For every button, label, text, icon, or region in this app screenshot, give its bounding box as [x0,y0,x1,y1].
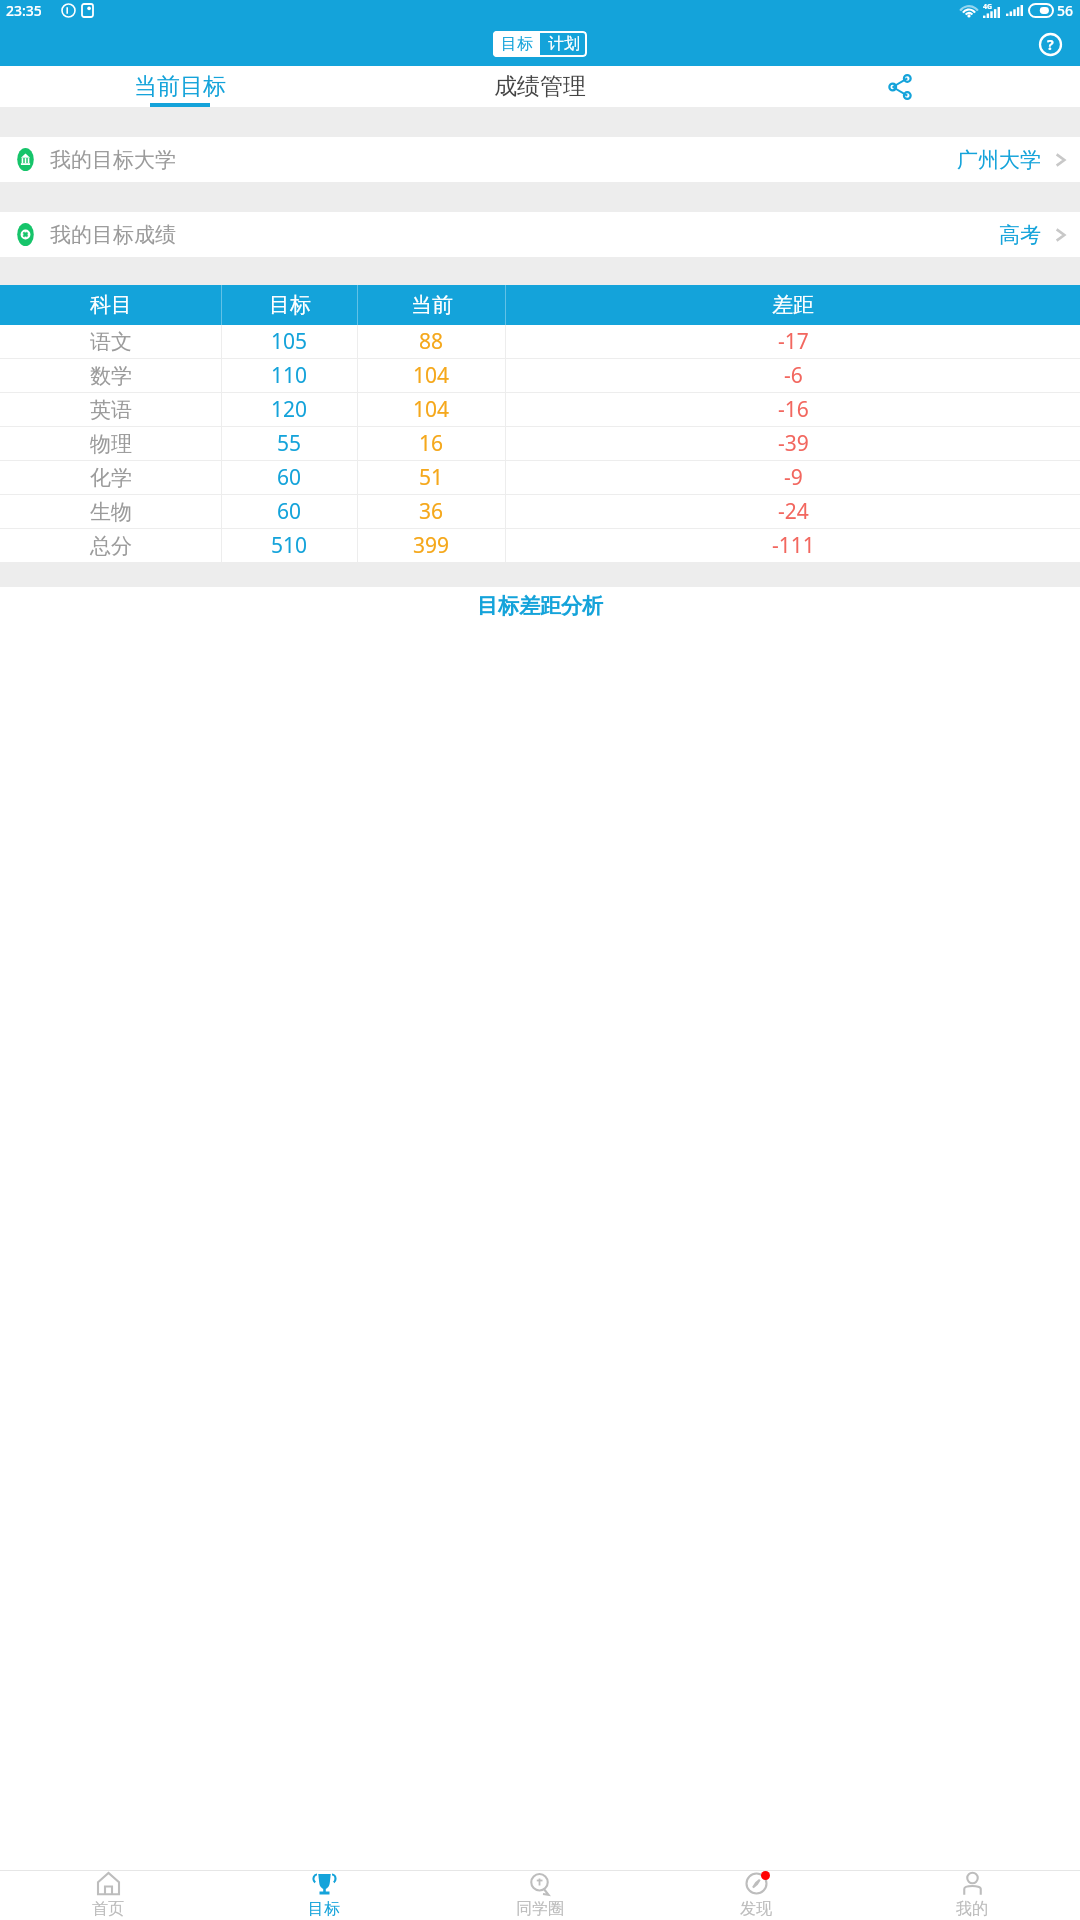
staticText: -16 [778,395,809,424]
staticText: 语文 [90,329,132,355]
staticText: 总分 [90,533,132,559]
staticText: 目标 [501,34,533,54]
staticText: -6 [784,361,803,390]
staticText: 88 [419,327,444,356]
button[interactable]: 英语 [0,393,1080,426]
staticText: -39 [778,429,809,458]
staticText: 16 [419,429,444,458]
staticText: 510 [271,531,308,560]
button[interactable]: 我的目标大学 [0,137,1080,182]
staticText: 生物 [90,499,132,525]
staticText: 化学 [90,465,132,491]
staticText: 同学圈 [516,1899,564,1919]
staticText: 105 [271,327,308,356]
button[interactable]: 当前目标 [0,66,360,107]
staticText: -24 [778,497,809,526]
staticText: 我的目标成绩 [50,222,176,248]
staticText: 399 [413,531,450,560]
staticText: 60 [277,463,302,492]
button[interactable]: 成绩管理 [360,66,720,107]
staticText: 广州大学 [957,147,1041,173]
staticText: -9 [784,463,803,492]
staticText: 目标 [269,292,311,318]
staticText: 4G [983,2,993,12]
button[interactable]: 计划 [540,31,587,57]
staticText: 我的目标大学 [50,147,176,173]
staticText: 目标差距分析 [477,593,603,619]
button[interactable]: Help [1030,24,1070,64]
button[interactable]: 目标 [493,31,540,57]
staticText: 首页 [92,1899,124,1919]
staticText: 120 [271,395,308,424]
button[interactable]: 物理 [0,427,1080,460]
staticText: -111 [772,531,815,560]
button[interactable]: 总分 [0,529,1080,562]
button[interactable]: 同学圈 [432,1870,648,1920]
button[interactable]: 首页 [0,1870,216,1920]
staticText: 当前 [411,292,453,318]
staticText: 51 [419,463,444,492]
staticText: 104 [413,395,450,424]
staticText: 55 [277,429,302,458]
staticText: 英语 [90,397,132,423]
staticText: 高考 [999,222,1041,248]
staticText: -17 [778,327,809,356]
staticText: 计划 [548,34,580,54]
button[interactable]: 生物 [0,495,1080,528]
staticText: 23:35 [6,1,42,20]
button[interactable]: 目标 [216,1870,432,1920]
button[interactable]: 语文 [0,325,1080,358]
button[interactable]: 数学 [0,359,1080,392]
staticText: 目标 [308,1899,340,1919]
staticText: 36 [419,497,444,526]
staticText: 104 [413,361,450,390]
button[interactable]: Share [720,66,1080,107]
staticText: 60 [277,497,302,526]
staticText: ? [1047,35,1054,54]
button[interactable]: 发现 [648,1870,864,1920]
button[interactable]: 目标差距分析 [0,587,1080,624]
staticText: 110 [271,361,308,390]
staticText: 当前目标 [134,72,226,101]
staticText: 发现 [740,1899,772,1919]
staticText: 数学 [90,363,132,389]
staticText: 物理 [90,431,132,457]
staticText: 科目 [90,292,132,318]
staticText: 56 [1057,1,1074,20]
staticText: 差距 [772,292,814,318]
button[interactable]: 我的 [864,1870,1080,1920]
staticText: 我的 [956,1899,988,1919]
staticText: 成绩管理 [494,72,586,101]
button[interactable]: 化学 [0,461,1080,494]
button[interactable]: 我的目标成绩 [0,212,1080,257]
